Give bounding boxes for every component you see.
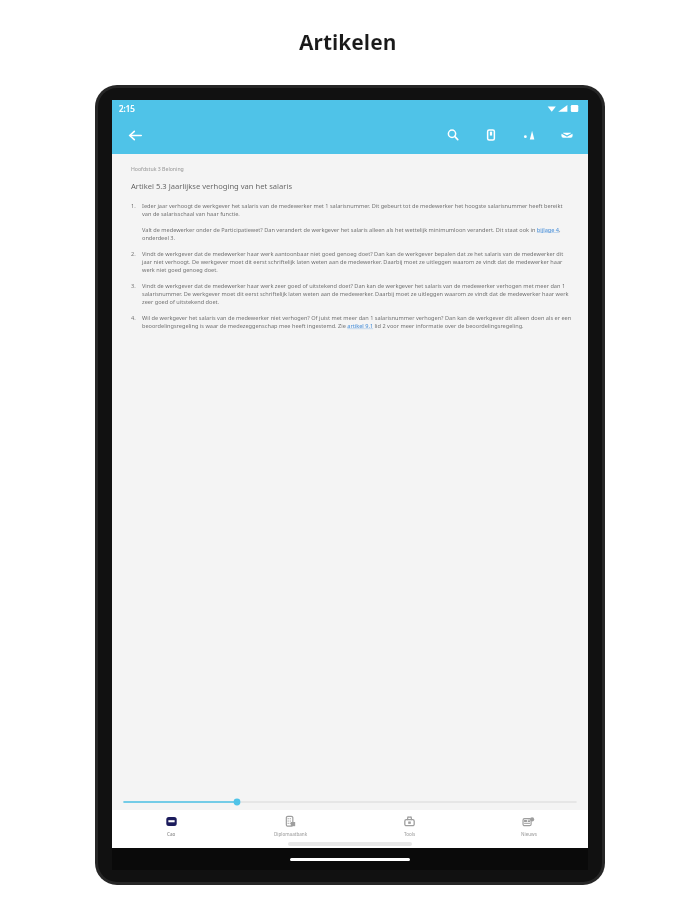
staticText: Wil de werkgever het salaris van de mede…	[142, 314, 572, 330]
button[interactable]: Back	[121, 121, 149, 149]
staticText: 2.	[131, 250, 142, 258]
button[interactable]: Text size	[517, 123, 541, 147]
button[interactable]: Diplomaatbank	[231, 810, 350, 848]
staticText: 1.	[131, 202, 142, 210]
button[interactable]: Reading progress	[124, 794, 576, 810]
staticText: Vindt de werkgever dat de medewerker haa…	[142, 250, 572, 274]
staticText: Vindt de werkgever dat de medewerker haa…	[142, 282, 572, 306]
button[interactable]: Cao	[112, 810, 231, 848]
staticText: 3.	[131, 282, 142, 290]
staticText: Tools	[404, 831, 416, 837]
staticText: 2:15	[119, 103, 135, 114]
staticText: Artikelen	[299, 28, 397, 57]
button[interactable]: Tools	[350, 810, 469, 848]
staticText: Diplomaatbank	[274, 831, 308, 837]
staticText: Nieuws	[521, 831, 537, 837]
staticText: Artikel 5.3 Jaarlijkse verhoging van het…	[131, 181, 293, 191]
button[interactable]: Bookmark	[479, 123, 503, 147]
staticText: Hoofdstuk 3 Beloning	[131, 165, 184, 172]
button[interactable]: Mail	[555, 123, 579, 147]
staticText: 4.	[131, 314, 142, 322]
staticText: Valt de medewerker onder de Participatie…	[142, 226, 572, 242]
staticText: Cao	[167, 831, 176, 837]
button[interactable]: Nieuws	[469, 810, 588, 848]
button[interactable]: Search	[441, 123, 465, 147]
staticText: Ieder jaar verhoogt de werkgever het sal…	[142, 202, 572, 218]
